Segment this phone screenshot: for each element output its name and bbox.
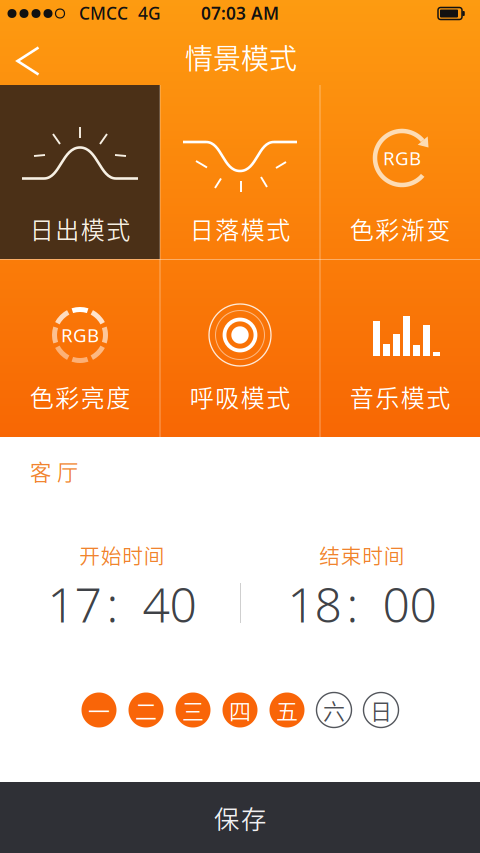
staticText: 17	[47, 572, 101, 636]
button[interactable]: 一	[81, 692, 116, 727]
staticText: 六	[323, 694, 345, 726]
staticText: 情景模式	[185, 37, 297, 77]
staticText: 二	[135, 694, 157, 726]
button[interactable]: 日出模式	[0, 85, 160, 259]
button[interactable]: 呼吸模式	[160, 260, 320, 437]
button[interactable]: 17	[47, 572, 196, 636]
staticText: 日	[370, 694, 392, 726]
staticText: 色彩亮度	[30, 379, 130, 414]
staticText: 色彩渐变	[350, 211, 450, 246]
button[interactable]: 日落模式	[160, 85, 320, 259]
button[interactable]: 六	[316, 692, 351, 727]
staticText: 保存	[214, 799, 266, 836]
button[interactable]: 保存	[0, 782, 480, 853]
staticText: 四	[229, 694, 251, 726]
staticText: :	[346, 572, 358, 636]
staticText: 00	[382, 572, 436, 636]
staticText: 18	[287, 572, 341, 636]
staticText: 日出模式	[30, 211, 130, 246]
button[interactable]: RGB	[0, 260, 160, 437]
staticText: 日落模式	[190, 211, 290, 246]
staticText: 客	[30, 456, 51, 486]
button[interactable]: 五	[269, 692, 304, 727]
button[interactable]: 音乐模式	[320, 260, 480, 437]
staticText: 开始时间	[79, 540, 165, 570]
button[interactable]: 18	[287, 572, 436, 636]
button[interactable]: RGB	[320, 85, 480, 259]
button[interactable]: Back	[6, 39, 50, 83]
staticText: 三	[182, 694, 204, 726]
staticText: 07:03 AM	[201, 1, 279, 24]
staticText: 五	[276, 694, 298, 726]
button[interactable]: 日	[363, 692, 398, 727]
staticText: :	[106, 572, 118, 636]
staticText: 呼吸模式	[190, 379, 290, 414]
staticText: RGB	[61, 323, 99, 347]
button[interactable]: 二	[128, 692, 163, 727]
staticText: RGB	[383, 146, 421, 170]
staticText: 结束时间	[319, 540, 405, 570]
staticText: 音乐模式	[350, 379, 450, 414]
button[interactable]: 三	[175, 692, 210, 727]
staticText: 一	[88, 694, 110, 726]
staticText: 40	[142, 572, 196, 636]
button[interactable]: 四	[222, 692, 257, 727]
staticText: 厅	[57, 456, 78, 486]
staticText: CMCC 4G	[79, 1, 161, 24]
